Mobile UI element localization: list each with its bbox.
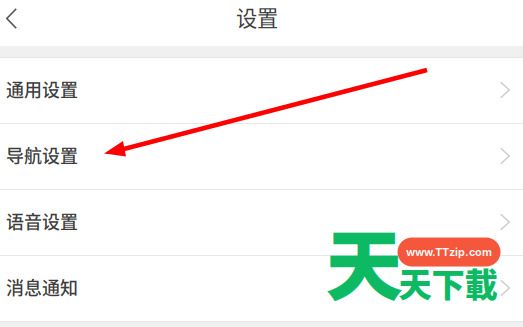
staticText: 设置 — [236, 2, 278, 32]
staticText: 天下載 — [398, 258, 497, 307]
staticText: www.TTzip.com — [406, 245, 492, 259]
button[interactable]: 通用设置 — [0, 58, 523, 123]
staticText: 导航设置 — [6, 142, 78, 168]
button[interactable]: 语音设置 — [0, 190, 523, 255]
button[interactable]: 导航设置 — [0, 124, 523, 189]
staticText: 语音设置 — [6, 208, 78, 234]
staticText: 通用设置 — [6, 76, 78, 102]
button[interactable]: 消息通知 — [0, 256, 523, 321]
button[interactable]: Back — [0, 0, 34, 37]
staticText: 消息通知 — [6, 274, 78, 300]
staticText: 天 — [325, 204, 402, 316]
